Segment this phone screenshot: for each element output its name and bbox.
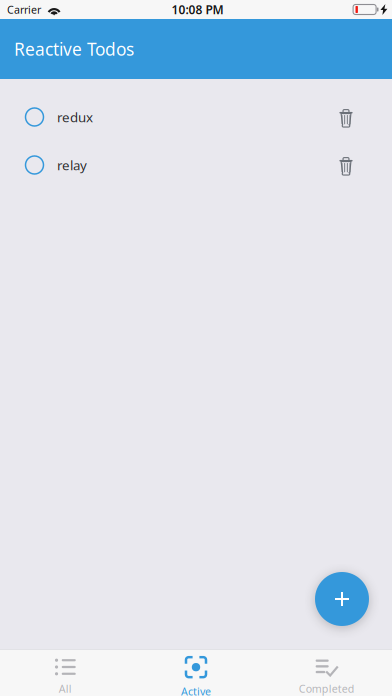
button[interactable]: Toggle redux	[17, 100, 51, 134]
staticText: relay	[57, 156, 87, 174]
staticText: Reactive Todos	[14, 37, 134, 60]
button[interactable]: Completed	[261, 650, 392, 696]
staticText: Completed	[299, 681, 355, 696]
staticText: Carrier	[7, 2, 41, 17]
staticText: 10:08 PM	[171, 1, 223, 17]
button[interactable]: Add todo	[315, 572, 369, 626]
button[interactable]: Toggle relay	[17, 148, 51, 182]
staticText: All	[59, 681, 72, 696]
button[interactable]: Delete relay	[331, 148, 361, 182]
button[interactable]: All	[0, 650, 131, 696]
staticText: redux	[57, 108, 93, 126]
button[interactable]: Active	[131, 650, 261, 696]
staticText: Active	[181, 684, 211, 696]
button[interactable]: Delete redux	[331, 100, 361, 134]
